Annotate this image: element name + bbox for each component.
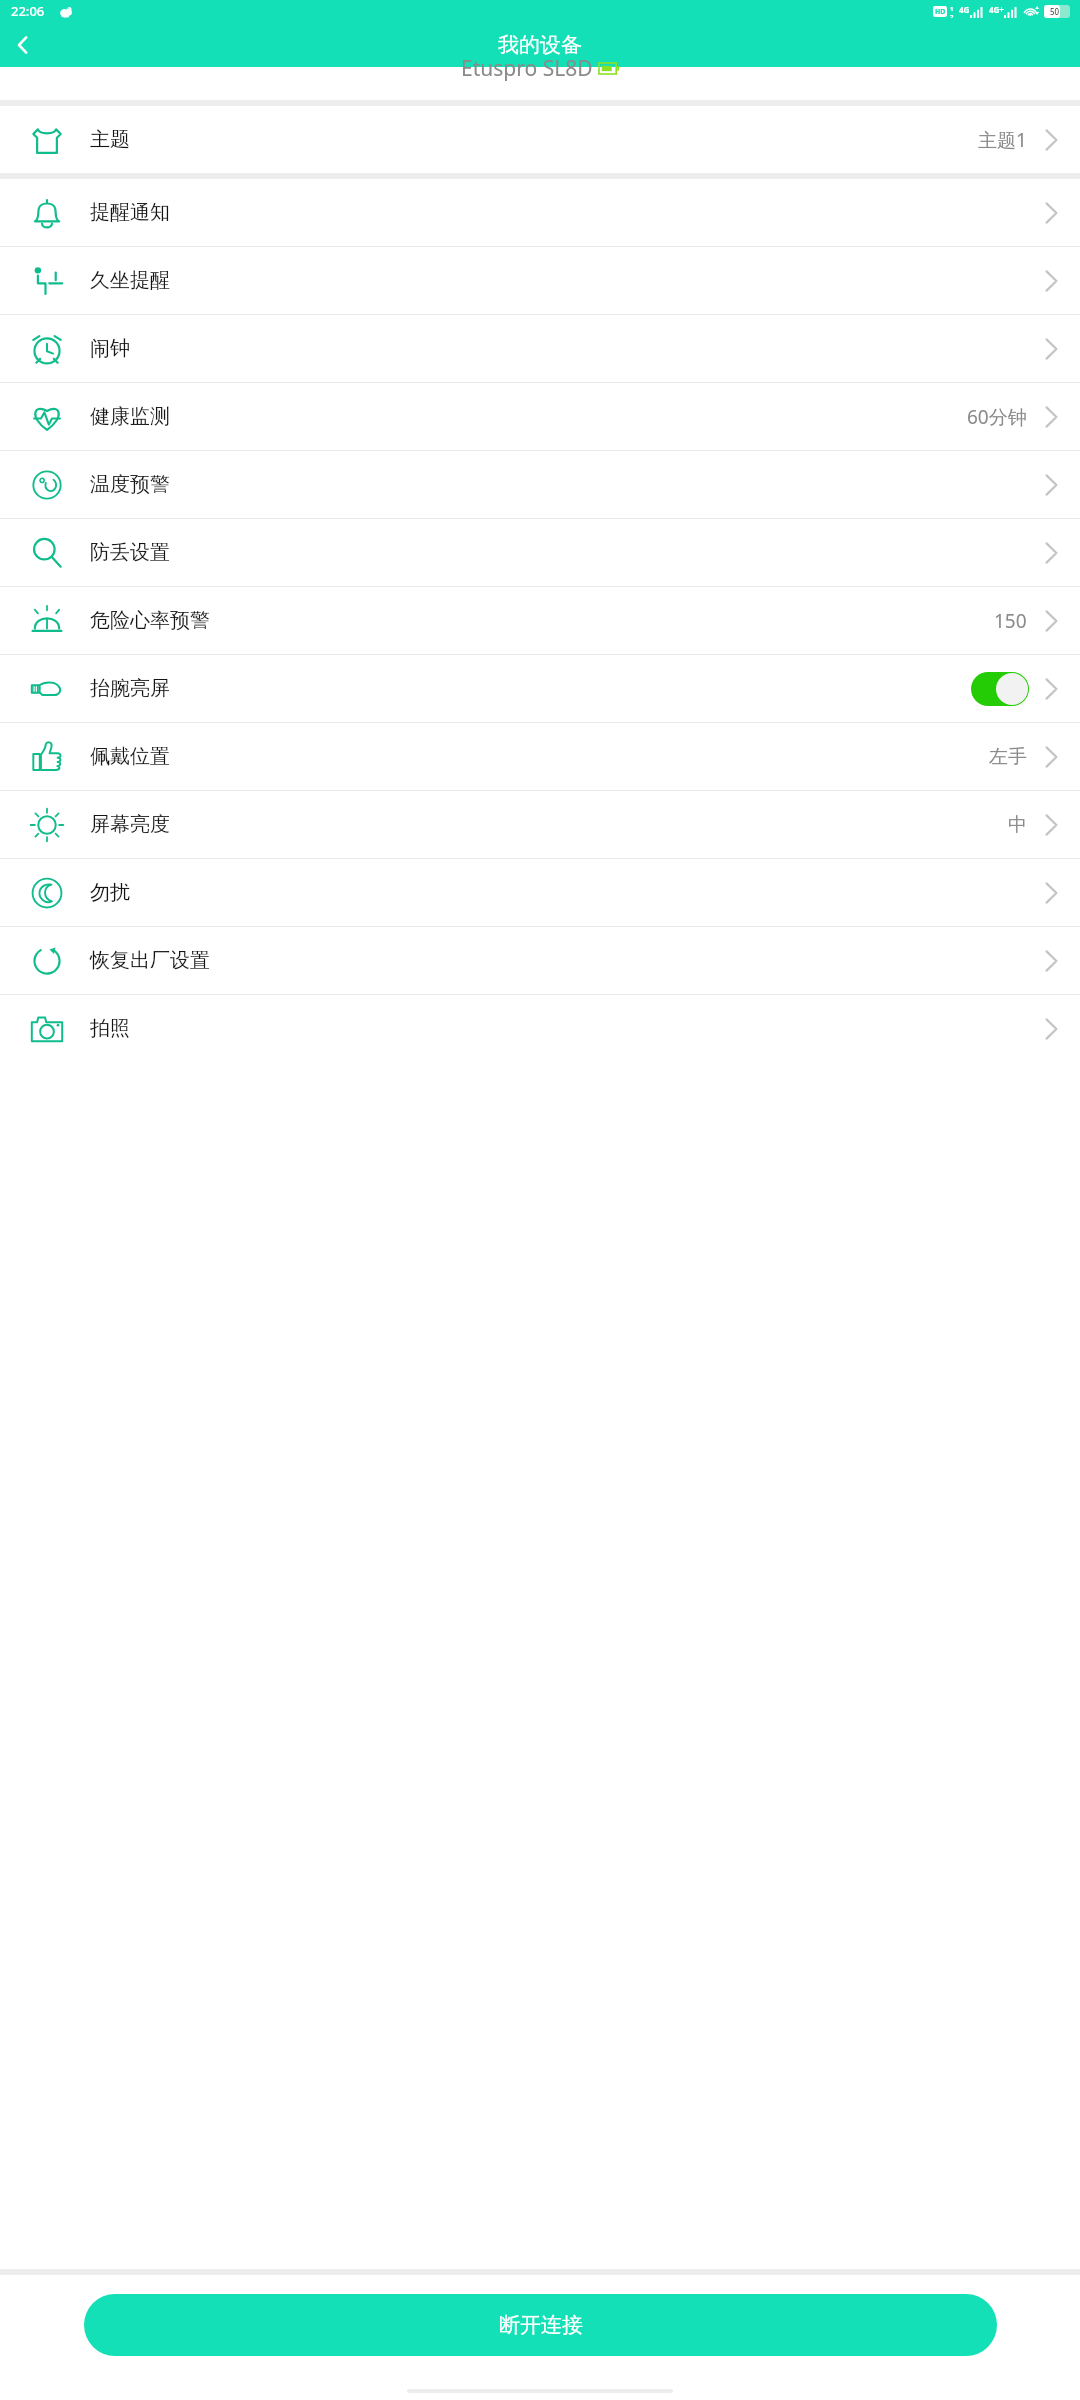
- staticText: 主题1: [978, 127, 1027, 153]
- staticText: 抬腕亮屏: [90, 676, 170, 701]
- button[interactable]: 勿扰: [0, 859, 1080, 926]
- staticText: 闹钟: [90, 336, 130, 361]
- staticText: 断开连接: [499, 2312, 583, 2338]
- button[interactable]: 提醒通知: [0, 179, 1080, 246]
- button[interactable]: 温度预警: [0, 451, 1080, 518]
- staticText: 勿扰: [90, 880, 130, 905]
- staticText: 拍照: [90, 1016, 130, 1041]
- staticText: 50: [1050, 6, 1060, 17]
- button[interactable]: 屏幕亮度: [0, 791, 1080, 858]
- staticText: 2: [950, 13, 954, 18]
- button[interactable]: 佩戴位置: [0, 723, 1080, 790]
- staticText: 150: [994, 608, 1027, 634]
- staticText: 中: [1008, 813, 1027, 837]
- staticText: Etuspro SL8D: [461, 54, 593, 83]
- staticText: 久坐提醒: [90, 268, 170, 293]
- staticText: 危险心率预警: [90, 608, 210, 633]
- button[interactable]: 抬腕亮屏: [0, 655, 1080, 722]
- button[interactable]: 久坐提醒: [0, 247, 1080, 314]
- button[interactable]: 恢复出厂设置: [0, 927, 1080, 994]
- staticText: 4G: [959, 4, 970, 15]
- staticText: 60分钟: [967, 404, 1027, 430]
- staticText: 22:06: [11, 2, 45, 20]
- staticText: 我的设备: [498, 32, 582, 58]
- staticText: 温度预警: [90, 472, 170, 497]
- staticText: 1: [950, 5, 954, 13]
- button[interactable]: 危险心率预警: [0, 587, 1080, 654]
- staticText: 屏幕亮度: [90, 812, 170, 837]
- staticText: 健康监测: [90, 404, 170, 429]
- button[interactable]: 主题: [0, 106, 1080, 173]
- button[interactable]: 防丢设置: [0, 519, 1080, 586]
- staticText: 恢复出厂设置: [90, 948, 210, 973]
- button[interactable]: 健康监测: [0, 383, 1080, 450]
- button[interactable]: 拍照: [0, 995, 1080, 1062]
- staticText: HD: [935, 7, 946, 17]
- staticText: 防丢设置: [90, 540, 170, 565]
- staticText: 主题: [90, 127, 130, 152]
- staticText: 4G+: [989, 4, 1004, 15]
- button[interactable]: Raise to wake toggle: [971, 672, 1029, 706]
- button[interactable]: Back: [0, 22, 46, 67]
- staticText: 左手: [989, 745, 1027, 769]
- button[interactable]: 闹钟: [0, 315, 1080, 382]
- button[interactable]: 断开连接: [84, 2294, 997, 2356]
- staticText: 提醒通知: [90, 200, 170, 225]
- staticText: 佩戴位置: [90, 744, 170, 769]
